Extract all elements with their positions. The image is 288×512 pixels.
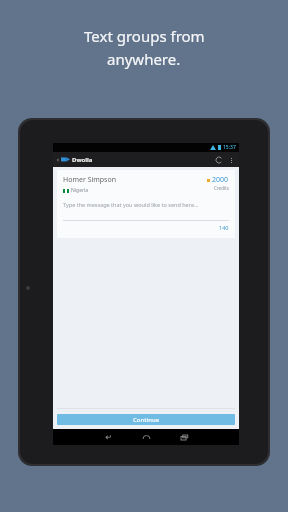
- staticText: 15:37: [223, 144, 236, 151]
- button[interactable]: More options: [226, 155, 236, 165]
- button[interactable]: Recent apps: [173, 429, 195, 445]
- staticText: Text groups from: [84, 26, 205, 46]
- button[interactable]: Home: [135, 429, 157, 445]
- button[interactable]: Back: [97, 429, 119, 445]
- staticText: Nigeria: [71, 187, 89, 194]
- staticText: Continue: [133, 416, 160, 424]
- staticText: Dwolla: [72, 156, 93, 164]
- staticText: 2000: [212, 175, 229, 185]
- staticText: Credits: [214, 185, 229, 191]
- staticText: Homer Simpson: [63, 175, 117, 185]
- staticText: Type the message that you would like to …: [63, 201, 199, 208]
- button[interactable]: Continue: [57, 414, 235, 425]
- button[interactable]: Refresh: [213, 154, 225, 166]
- staticText: 140: [219, 224, 229, 231]
- staticText: anywhere.: [107, 49, 181, 69]
